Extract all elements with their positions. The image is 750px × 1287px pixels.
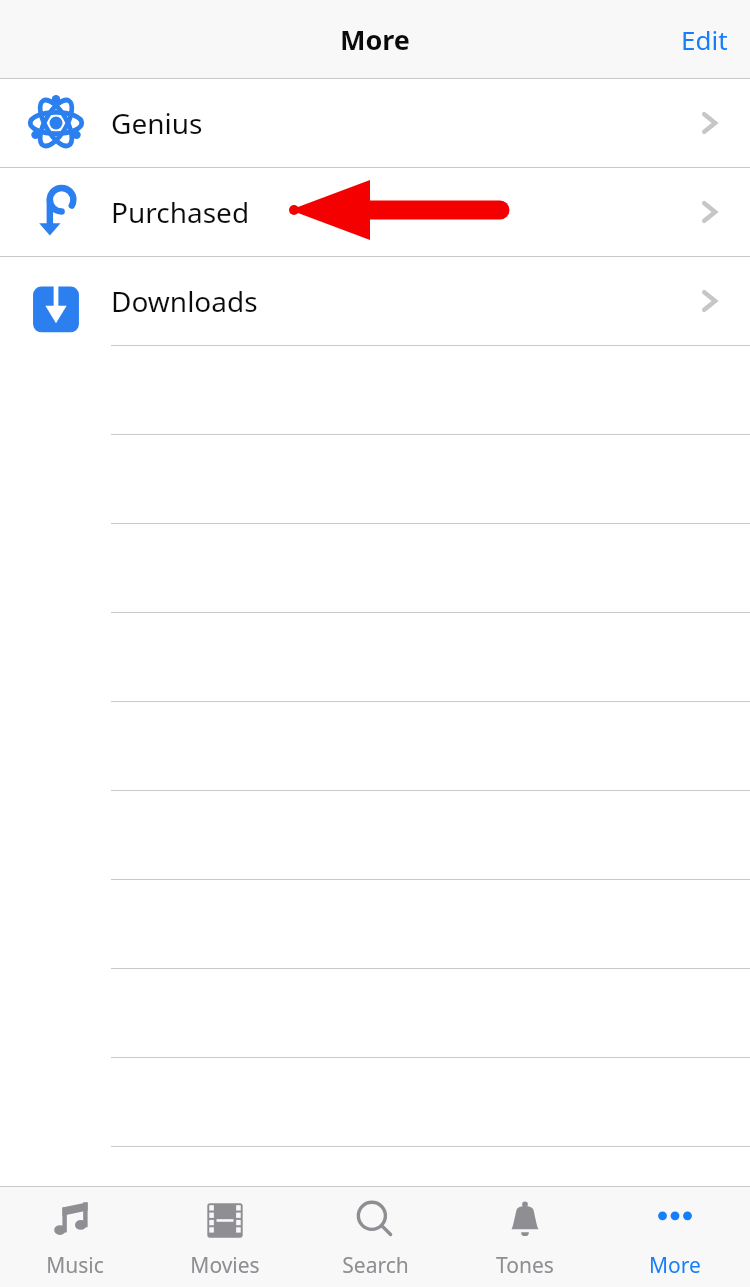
button[interactable]: Downloads xyxy=(0,257,750,345)
button[interactable]: Movies xyxy=(150,1187,300,1287)
staticText: More xyxy=(649,1251,701,1280)
button[interactable]: Tones xyxy=(450,1187,600,1287)
staticText: Tones xyxy=(496,1251,554,1280)
staticText: Search xyxy=(342,1251,409,1280)
staticText: More xyxy=(340,21,410,58)
staticText: Genius xyxy=(111,104,694,142)
staticText: Downloads xyxy=(111,282,694,320)
staticText: Purchased xyxy=(111,193,694,231)
button[interactable]: Edit xyxy=(659,8,750,71)
staticText: Edit xyxy=(681,22,728,57)
staticText: Music xyxy=(46,1251,104,1280)
other: Genius xyxy=(28,95,84,151)
button[interactable]: Genius xyxy=(0,79,750,167)
button[interactable]: Music xyxy=(0,1187,150,1287)
button[interactable]: Search xyxy=(300,1187,450,1287)
staticText: Movies xyxy=(190,1251,260,1280)
button[interactable]: More xyxy=(600,1187,750,1287)
other: Purchased xyxy=(28,184,84,240)
button[interactable]: Purchased xyxy=(0,168,750,256)
other: Downloads xyxy=(28,273,84,329)
